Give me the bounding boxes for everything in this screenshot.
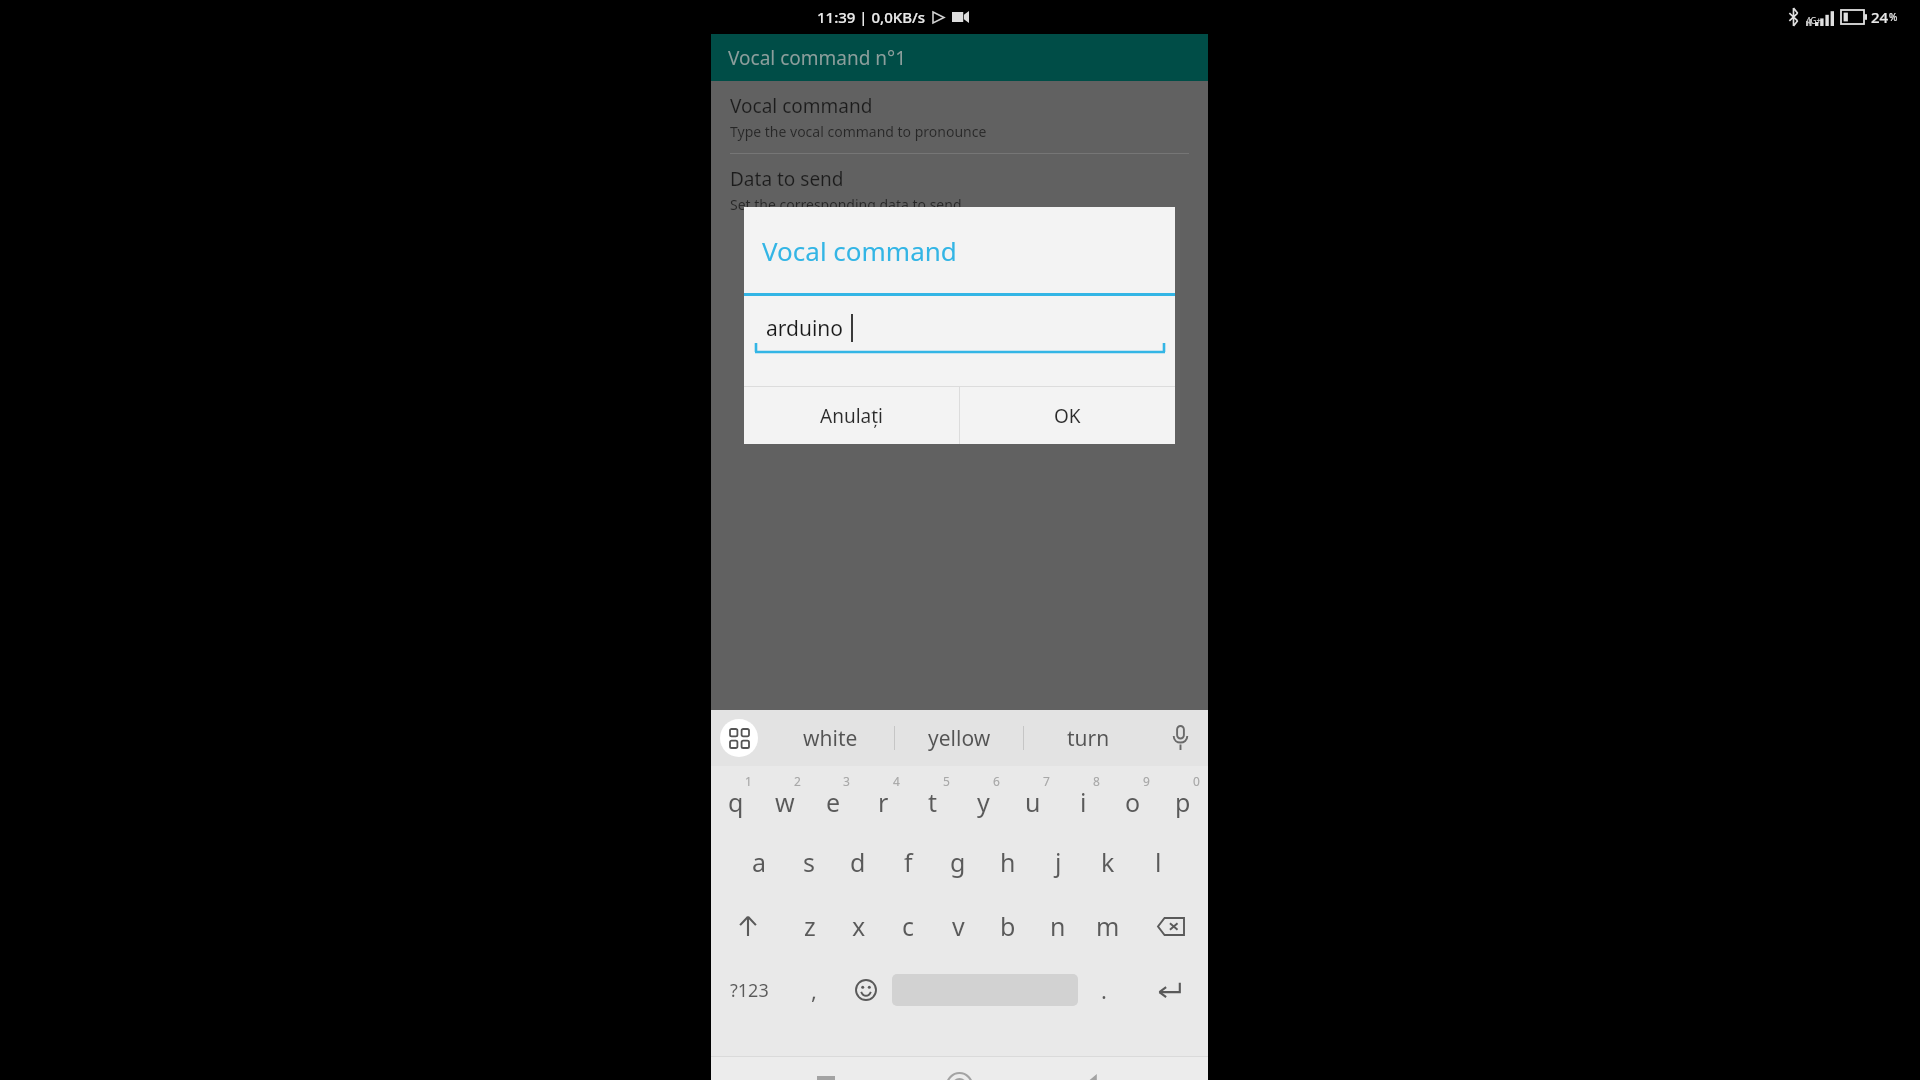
staticText: Vocal command (730, 93, 873, 119)
staticText: OK (1054, 403, 1081, 429)
staticText: a (752, 845, 767, 879)
staticText: turn (1067, 724, 1110, 753)
staticText: s (803, 845, 815, 879)
staticText: 7 (1043, 773, 1050, 789)
button[interactable]: Keyboard options (711, 710, 767, 766)
button[interactable]: OK (960, 387, 1175, 444)
staticText: n (1050, 909, 1066, 943)
staticText: arduino (766, 314, 844, 343)
staticText: 8 (1093, 773, 1100, 789)
button[interactable]: h (983, 830, 1033, 894)
button[interactable]: p (1158, 766, 1208, 830)
staticText: , (811, 975, 817, 1005)
button[interactable]: e (809, 766, 858, 830)
button[interactable]: l (1133, 830, 1183, 894)
button[interactable]: Anulați (744, 387, 959, 444)
button[interactable]: n (1033, 894, 1083, 958)
staticText: r (878, 785, 889, 819)
button[interactable]: Back (1067, 1060, 1117, 1080)
staticText: Vocal command (762, 233, 957, 268)
staticText: 24 (1871, 7, 1889, 27)
staticText: h (1000, 845, 1016, 879)
button[interactable]: Emoji (840, 958, 892, 1022)
staticText: p (1175, 785, 1191, 819)
button[interactable]: yellow (895, 710, 1023, 766)
button[interactable]: u (1008, 766, 1058, 830)
staticText: i (1080, 785, 1087, 819)
staticText: w (775, 785, 795, 819)
staticText: k (1101, 845, 1115, 879)
button[interactable]: m (1083, 894, 1133, 958)
button[interactable]: q (711, 766, 760, 830)
button[interactable]: . (1078, 958, 1130, 1022)
staticText: 4 (893, 773, 900, 789)
staticText: u (1025, 785, 1041, 819)
staticText: t (928, 785, 938, 819)
staticText: x (852, 909, 866, 943)
staticText: % (1889, 10, 1898, 24)
button[interactable]: i (1058, 766, 1108, 830)
button[interactable]: v (933, 894, 983, 958)
staticText: m (1096, 909, 1120, 943)
staticText: o (1125, 785, 1141, 819)
button[interactable]: w (760, 766, 809, 830)
button[interactable]: Backspace (1133, 894, 1208, 958)
button[interactable]: g (933, 830, 983, 894)
button[interactable]: Enter (1130, 958, 1208, 1022)
staticText: z (804, 909, 816, 943)
button[interactable]: y (958, 766, 1008, 830)
staticText: 1 (745, 773, 752, 789)
button[interactable]: t (908, 766, 958, 830)
button[interactable]: c (883, 894, 933, 958)
button[interactable]: j (1033, 830, 1083, 894)
staticText: 4G+ (1806, 15, 1821, 26)
button[interactable]: a (735, 830, 784, 894)
button[interactable]: Home (934, 1060, 984, 1080)
button[interactable]: s (784, 830, 833, 894)
staticText: Set the corresponding data to send (730, 195, 962, 214)
staticText: yellow (928, 724, 991, 753)
button[interactable]: f (883, 830, 933, 894)
staticText: g (950, 845, 966, 879)
button[interactable]: b (983, 894, 1033, 958)
staticText: b (1000, 909, 1016, 943)
staticText: d (850, 845, 866, 879)
button[interactable]: ?123 (711, 958, 788, 1022)
staticText: 11:39 | 0,0KB/s (817, 7, 926, 27)
staticText: Vocal command n°1 (728, 45, 907, 71)
button[interactable]: z (785, 894, 834, 958)
button[interactable]: k (1083, 830, 1133, 894)
staticText: 3 (843, 773, 850, 789)
staticText: 5 (943, 773, 950, 789)
button[interactable]: , (788, 958, 840, 1022)
staticText: Anulați (820, 403, 883, 429)
staticText: q (728, 785, 744, 819)
staticText: f (904, 845, 913, 879)
staticText: Data to send (730, 166, 844, 192)
button[interactable]: Shift (711, 894, 785, 958)
button[interactable]: o (1108, 766, 1158, 830)
button[interactable]: Voice input (1152, 710, 1208, 766)
staticText: 0 (1193, 773, 1200, 789)
button[interactable]: Data to send (711, 154, 1208, 226)
staticText: l (1155, 845, 1162, 879)
staticText: Type the vocal command to pronounce (730, 122, 987, 141)
button[interactable]: d (833, 830, 883, 894)
staticText: v (952, 909, 965, 943)
staticText: . (1101, 975, 1107, 1005)
button[interactable]: x (834, 894, 883, 958)
button[interactable]: white (767, 710, 894, 766)
staticText: y (977, 785, 990, 819)
button[interactable]: Vocal command (711, 81, 1208, 153)
staticText: white (803, 724, 858, 753)
staticText: j (1055, 845, 1062, 879)
button[interactable]: turn (1024, 710, 1152, 766)
staticText: e (826, 785, 841, 819)
button[interactable]: Recents (801, 1060, 851, 1080)
staticText: c (902, 909, 915, 943)
staticText: 9 (1143, 773, 1150, 789)
staticText: ?123 (730, 978, 769, 1003)
staticText: 6 (993, 773, 1000, 789)
button[interactable]: r (858, 766, 908, 830)
